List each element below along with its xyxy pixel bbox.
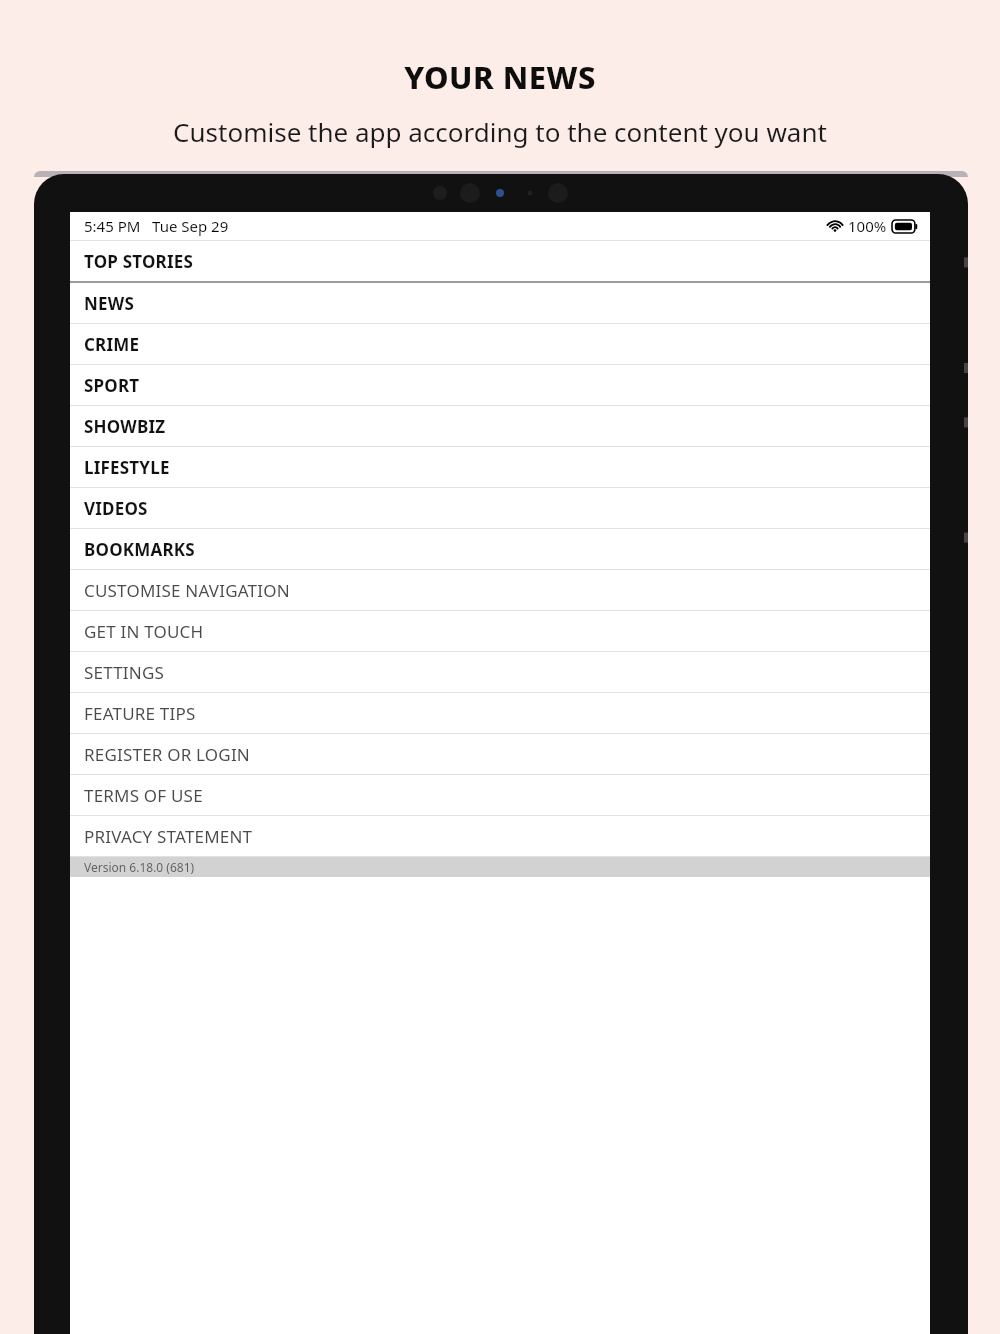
button[interactable]: TERMS OF USE [70, 775, 930, 815]
button[interactable]: SETTINGS [70, 652, 930, 692]
staticText: SHOWBIZ [84, 415, 166, 438]
staticText: NEWS [84, 292, 134, 315]
staticText: FEATURE TIPS [84, 702, 196, 725]
button[interactable]: VIDEOS [70, 488, 930, 528]
staticText: CRIME [84, 333, 140, 356]
button[interactable]: FEATURE TIPS [70, 693, 930, 733]
staticText: CUSTOMISE NAVIGATION [84, 579, 290, 602]
button[interactable]: REGISTER OR LOGIN [70, 734, 930, 774]
button[interactable]: CRIME [70, 324, 930, 364]
button[interactable]: PRIVACY STATEMENT [70, 816, 930, 856]
button[interactable]: BOOKMARKS [70, 529, 930, 569]
button[interactable]: NEWS [70, 283, 930, 323]
button[interactable]: CUSTOMISE NAVIGATION [70, 570, 930, 610]
button[interactable]: SPORT [70, 365, 930, 405]
staticText: BOOKMARKS [84, 538, 195, 561]
staticText: PRIVACY STATEMENT [84, 825, 253, 848]
staticText: LIFESTYLE [84, 456, 170, 479]
staticText: 100% [848, 216, 887, 236]
button[interactable]: TOP STORIES [70, 241, 930, 281]
button[interactable]: GET IN TOUCH [70, 611, 930, 651]
staticText: TOP STORIES [84, 250, 194, 273]
staticText: VIDEOS [84, 497, 148, 520]
staticText: SETTINGS [84, 661, 165, 684]
staticText: REGISTER OR LOGIN [84, 743, 250, 766]
staticText: TERMS OF USE [84, 784, 203, 807]
staticText: 5:45 PM Tue Sep 29 [84, 216, 229, 236]
button[interactable]: LIFESTYLE [70, 447, 930, 487]
staticText: Customise the app according to the conte… [173, 114, 827, 149]
staticText: GET IN TOUCH [84, 620, 204, 643]
staticText: Version 6.18.0 (681) [84, 859, 195, 875]
button[interactable]: SHOWBIZ [70, 406, 930, 446]
staticText: SPORT [84, 374, 140, 397]
staticText: YOUR NEWS [404, 56, 596, 98]
